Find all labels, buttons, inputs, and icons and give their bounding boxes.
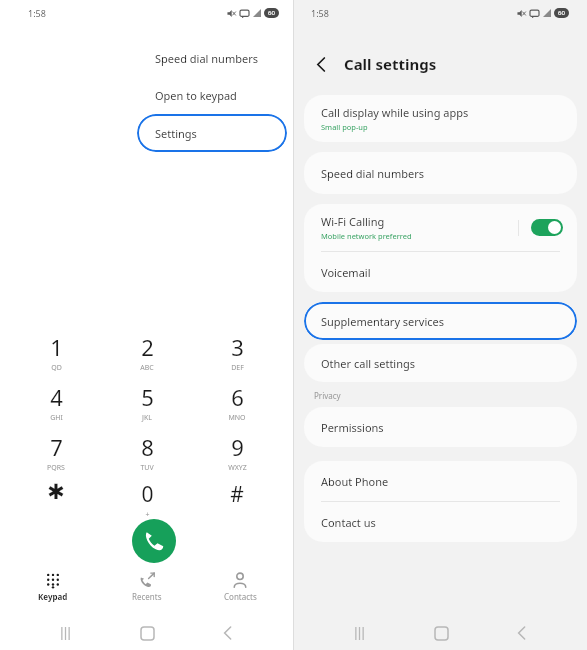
- staticText: About Phone: [321, 474, 389, 489]
- staticText: 0: [141, 480, 154, 509]
- button[interactable]: Recent apps: [342, 616, 376, 650]
- staticText: 60: [558, 9, 565, 17]
- staticText: DEF: [231, 363, 244, 373]
- staticText: Contacts: [224, 591, 257, 602]
- button[interactable]: Home: [130, 616, 164, 650]
- button[interactable]: Voicemail: [304, 252, 577, 292]
- staticText: ABC: [140, 363, 154, 373]
- button[interactable]: #: [202, 480, 272, 509]
- staticText: #: [230, 480, 244, 509]
- staticText: TUV: [140, 463, 154, 473]
- staticText: Call display while using apps: [321, 105, 469, 120]
- button[interactable]: Supplementary services: [304, 302, 577, 340]
- staticText: 7: [50, 432, 63, 462]
- button[interactable]: 8: [112, 432, 182, 473]
- staticText: 3: [231, 332, 244, 362]
- button[interactable]: Wi-Fi Calling toggle: [531, 219, 563, 236]
- button[interactable]: Recents: [107, 572, 187, 602]
- staticText: Voicemail: [321, 265, 371, 280]
- staticText: 1:58: [28, 7, 46, 19]
- staticText: 6: [231, 382, 244, 412]
- button[interactable]: 9: [202, 432, 272, 473]
- staticText: Contact us: [321, 515, 376, 530]
- staticText: Permissions: [321, 420, 384, 435]
- staticText: Speed dial numbers: [155, 51, 258, 66]
- staticText: Settings: [155, 126, 197, 141]
- staticText: MNO: [228, 413, 246, 423]
- staticText: QD: [51, 363, 62, 373]
- staticText: 2: [141, 332, 154, 362]
- button[interactable]: Permissions: [304, 407, 577, 447]
- staticText: WXYZ: [228, 463, 247, 473]
- button[interactable]: Speed dial numbers: [137, 40, 287, 77]
- button[interactable]: Home: [424, 616, 458, 650]
- button[interactable]: 7: [21, 432, 91, 473]
- staticText: Small pop-up: [321, 122, 368, 132]
- button[interactable]: Back: [211, 616, 245, 650]
- staticText: Supplementary services: [321, 314, 445, 329]
- staticText: JKL: [142, 413, 152, 423]
- button[interactable]: 4: [21, 382, 91, 423]
- staticText: GHI: [50, 413, 63, 423]
- button[interactable]: Recent apps: [48, 616, 82, 650]
- staticText: 8: [141, 432, 154, 462]
- staticText: 60: [268, 9, 275, 17]
- button[interactable]: Open to keypad: [137, 77, 287, 114]
- button[interactable]: Call display while using apps: [304, 95, 577, 142]
- staticText: +: [145, 510, 150, 520]
- staticText: 1:58: [311, 7, 329, 19]
- button[interactable]: 3: [202, 332, 272, 373]
- button[interactable]: Contacts: [200, 572, 280, 602]
- staticText: 4: [50, 382, 63, 412]
- button[interactable]: ✱: [21, 480, 91, 504]
- button[interactable]: 6: [202, 382, 272, 423]
- button[interactable]: 1: [21, 332, 91, 373]
- button[interactable]: Keypad: [13, 572, 93, 602]
- button[interactable]: Contact us: [304, 502, 577, 542]
- button[interactable]: Back: [505, 616, 539, 650]
- staticText: Recents: [132, 591, 162, 602]
- staticText: Wi-Fi Calling: [321, 214, 385, 229]
- button[interactable]: Speed dial numbers: [304, 152, 577, 194]
- button[interactable]: Back: [310, 53, 332, 75]
- staticText: Speed dial numbers: [321, 166, 424, 181]
- button[interactable]: 5: [112, 382, 182, 423]
- staticText: Call settings: [344, 54, 437, 74]
- button[interactable]: Wi-Fi Calling: [304, 204, 577, 251]
- staticText: 1: [50, 332, 63, 362]
- staticText: Other call settings: [321, 356, 416, 371]
- button[interactable]: Settings: [137, 114, 287, 152]
- staticText: 9: [231, 432, 244, 462]
- button[interactable]: Other call settings: [304, 344, 577, 382]
- staticText: Privacy: [314, 390, 341, 401]
- button[interactable]: About Phone: [304, 461, 577, 501]
- staticText: Open to keypad: [155, 88, 237, 103]
- button[interactable]: 0: [112, 480, 182, 520]
- button[interactable]: Call: [132, 519, 176, 563]
- staticText: ✱: [47, 480, 65, 504]
- button[interactable]: 2: [112, 332, 182, 373]
- staticText: 5: [141, 382, 154, 412]
- staticText: PQRS: [47, 463, 65, 473]
- staticText: Keypad: [38, 591, 68, 602]
- staticText: Mobile network preferred: [321, 231, 412, 241]
